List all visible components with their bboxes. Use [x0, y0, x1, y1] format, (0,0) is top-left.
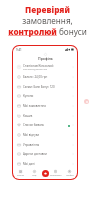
staticText: stas.kilsky@gmail.com [23, 68, 48, 71]
staticText: контролюй бонуси [8, 26, 87, 37]
button[interactable]: Каталог [14, 170, 27, 177]
button[interactable]: Мої замовлення [17, 101, 74, 111]
staticText: Мої відгуки [23, 133, 40, 137]
staticText: Мої дані [23, 162, 35, 166]
button[interactable]: Мої дані [17, 159, 74, 169]
button[interactable]: Список бажань [17, 120, 74, 130]
button[interactable]: Мої відгуки [17, 130, 74, 140]
staticText: Управління [23, 143, 40, 147]
button[interactable]: Станіслав Кільський [17, 62, 74, 72]
staticText: Список бажань [23, 123, 45, 127]
staticText: Баланс: 24,00 грн [23, 75, 48, 79]
button[interactable]: Кошик [42, 170, 49, 177]
button[interactable]: Замовлення [49, 170, 62, 177]
staticText: Перевіряй [25, 4, 70, 15]
button[interactable]: Баланс: 24,00 грн [17, 72, 74, 82]
button[interactable]: Кошик [17, 111, 74, 121]
button[interactable]: Купони [17, 91, 74, 101]
button[interactable]: Профіль [63, 170, 76, 177]
staticText: 9:41 [16, 48, 22, 52]
staticText: Мої замовлення [23, 104, 46, 108]
staticText: Станіслав Кільський [23, 64, 54, 68]
staticText: Схеми: Банк Бонус 120 [23, 85, 55, 89]
staticText: Профіль [66, 174, 74, 177]
button[interactable]: Управління [17, 140, 74, 150]
staticText: Акції [32, 174, 37, 177]
staticText: замовлення, [22, 15, 73, 26]
staticText: Адреси доставки [23, 152, 47, 156]
button[interactable]: Адреси доставки [17, 149, 74, 159]
staticText: Кошик [23, 114, 33, 118]
staticText: Каталог [17, 174, 25, 177]
staticText: Замовлення [50, 174, 62, 177]
staticText: Купони [23, 94, 34, 98]
staticText: Профіль [38, 56, 53, 61]
button[interactable]: Акції [28, 170, 41, 177]
button[interactable]: Схеми: Банк Бонус 120 [17, 82, 74, 92]
